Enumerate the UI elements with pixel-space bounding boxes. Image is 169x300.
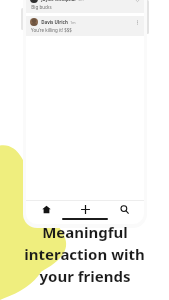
staticText: Davis Ulrich [41,19,68,25]
staticText: 1m [70,20,76,25]
staticText: interaction with [24,244,145,264]
staticText: 3m [78,0,84,2]
staticText: You're killing it! $$$ [31,27,72,33]
button[interactable]: Home [26,201,66,218]
button[interactable]: Search [105,201,144,218]
button[interactable]: Create [66,201,105,218]
staticText: Big bucks [31,4,52,10]
button[interactable]: Davis Ulrich [26,16,144,36]
button[interactable]: Jayde Westphal [26,0,144,13]
staticText: Jayde Westphal [41,0,76,2]
staticText: Meaningful [42,222,128,242]
staticText: your friends [39,266,131,286]
